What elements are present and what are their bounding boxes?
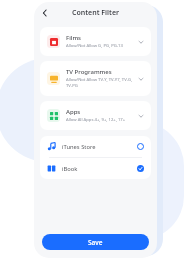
button[interactable]: iBook — [40, 158, 151, 179]
staticText: iTunes Store — [62, 143, 137, 151]
staticText: Apps — [66, 108, 81, 116]
staticText: iBook — [62, 165, 137, 173]
button[interactable]: TV Programmes — [40, 61, 151, 96]
button[interactable]: Films — [40, 27, 151, 56]
staticText: Allow All Apps 4+, 9+, 12+, 17+ — [66, 117, 126, 123]
staticText: Content Filter — [72, 8, 120, 18]
staticText: TV Programmes — [66, 68, 112, 76]
button[interactable]: Save — [42, 234, 149, 250]
button[interactable]: Apps — [40, 101, 151, 130]
button[interactable]: iTunes Store — [40, 136, 151, 157]
button[interactable]: Back — [38, 6, 52, 20]
staticText: Allow/Not Allow G, PG, PG-13 — [66, 43, 123, 49]
staticText: Save — [88, 238, 103, 247]
staticText: Allow/Not Allow TV-Y, TV-Y7, TV-G, TV-PG — [66, 77, 133, 89]
staticText: Films — [66, 34, 82, 42]
